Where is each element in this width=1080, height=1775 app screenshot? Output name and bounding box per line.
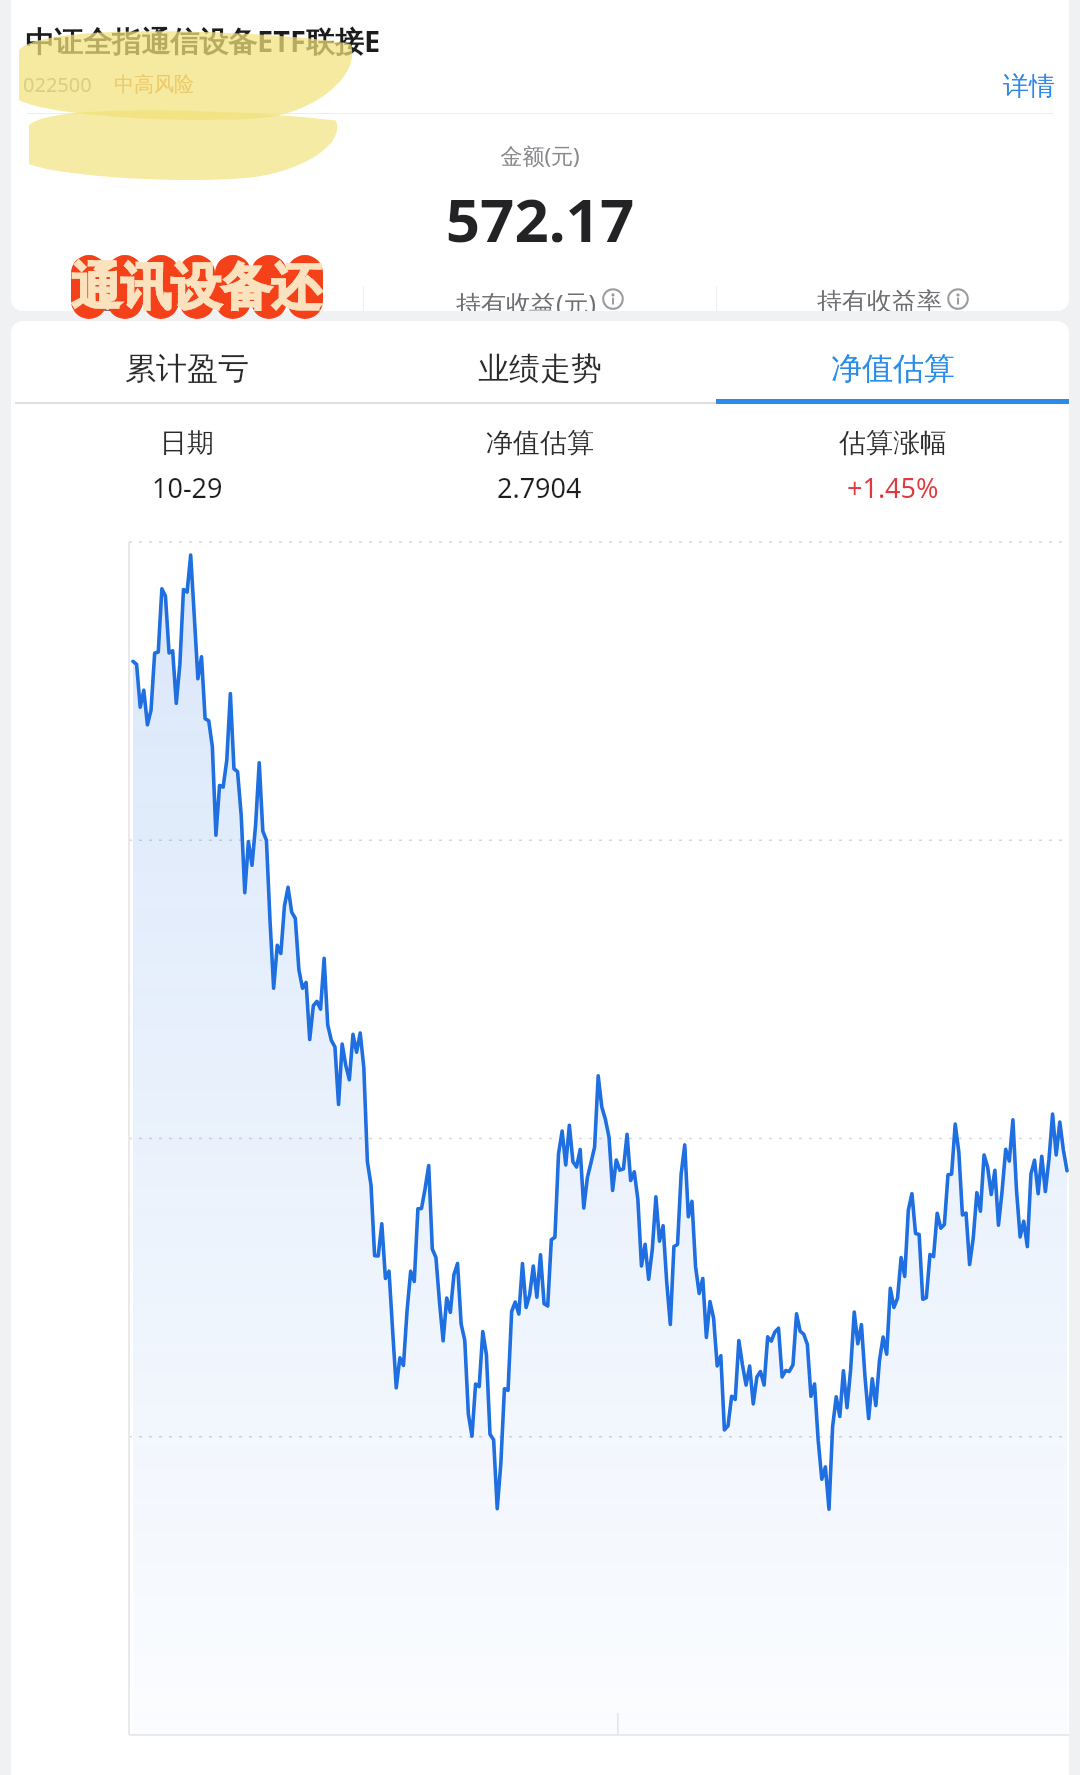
staticText: 净值估算 <box>486 426 594 460</box>
staticText: 中证全指通信设备ETF联接E <box>25 21 381 61</box>
staticText: 10-29 <box>152 469 223 506</box>
staticText: 持有收益(元) <box>456 286 597 311</box>
staticText: 572.17 <box>11 178 1069 260</box>
staticText: 通讯设备还挺香 <box>71 256 323 318</box>
staticText: 022500 <box>23 71 92 98</box>
staticText: 净值估算 <box>831 349 955 388</box>
button[interactable]: 净值估算 <box>716 337 1069 399</box>
button[interactable]: 详情 <box>989 64 1069 104</box>
staticText: 日期 <box>160 426 214 460</box>
button[interactable]: 持有收益率 <box>717 286 1069 311</box>
staticText: 金额(元) <box>11 140 1069 170</box>
button[interactable]: 通讯设备还挺香 <box>71 256 323 318</box>
staticText: 持有收益率 <box>817 286 942 311</box>
staticText: 中高风险 <box>114 72 194 97</box>
button[interactable]: 昨日收益(元) <box>11 286 363 311</box>
staticText: 估算涨幅 <box>839 426 947 460</box>
staticText: 昨日收益(元) <box>103 286 244 311</box>
staticText: 业绩走势 <box>478 349 602 388</box>
staticText: +1.45% <box>847 469 939 506</box>
button[interactable]: 持有收益(元) <box>364 286 716 311</box>
staticText: 累计盈亏 <box>125 349 249 388</box>
staticText: 详情 <box>1003 70 1055 98</box>
button[interactable]: 业绩走势 <box>363 337 716 399</box>
button[interactable]: 累计盈亏 <box>11 337 363 399</box>
staticText: 2.7904 <box>497 469 582 506</box>
